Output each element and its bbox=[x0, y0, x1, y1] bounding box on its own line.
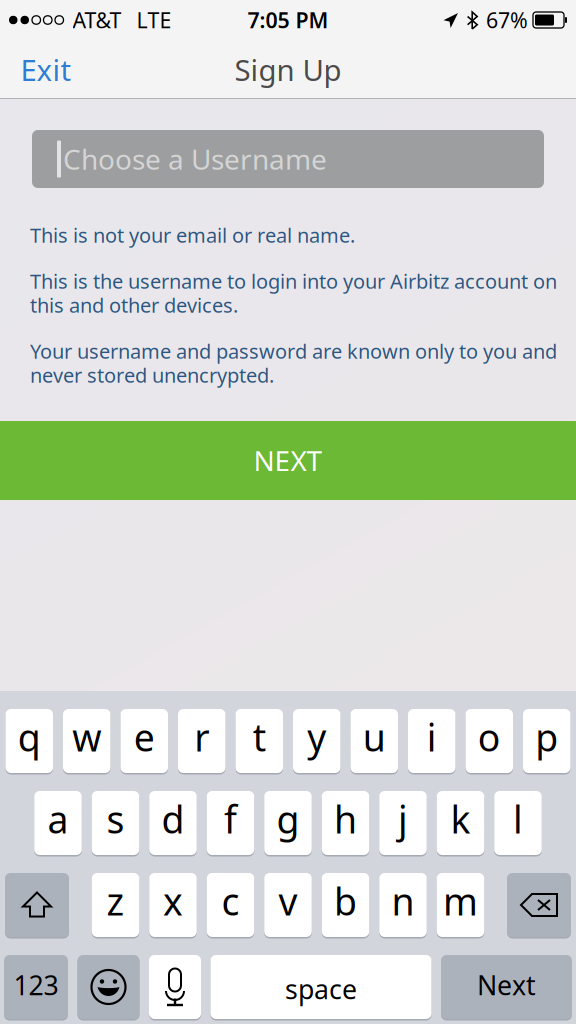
staticText: m bbox=[443, 876, 478, 926]
staticText: n bbox=[391, 876, 414, 926]
staticText: f bbox=[224, 794, 237, 844]
button[interactable]: space bbox=[210, 955, 431, 1019]
staticText: o bbox=[478, 712, 501, 762]
staticText: Your username and password are known onl… bbox=[30, 338, 557, 364]
button[interactable]: Dictation bbox=[149, 955, 201, 1019]
staticText: c bbox=[221, 876, 239, 926]
staticText: p bbox=[535, 712, 558, 762]
button[interactable]: r bbox=[178, 709, 225, 773]
button[interactable]: v bbox=[264, 873, 312, 937]
staticText: w bbox=[72, 712, 101, 762]
button[interactable]: t bbox=[235, 709, 283, 773]
staticText: AT&T bbox=[72, 6, 121, 34]
staticText: b bbox=[334, 876, 357, 926]
staticText: v bbox=[278, 876, 297, 926]
staticText: This is the username to login into your … bbox=[30, 268, 557, 294]
staticText: NEXT bbox=[253, 442, 322, 479]
staticText: z bbox=[106, 876, 124, 926]
staticText: j bbox=[398, 794, 408, 844]
button[interactable]: Choose a Username bbox=[32, 130, 544, 188]
button[interactable]: b bbox=[322, 873, 369, 937]
button[interactable]: 123 bbox=[4, 955, 68, 1019]
staticText: i bbox=[427, 712, 437, 762]
button[interactable]: m bbox=[437, 873, 484, 937]
staticText: e bbox=[134, 712, 155, 762]
staticText: r bbox=[194, 712, 209, 762]
staticText: Next bbox=[477, 967, 536, 1003]
staticText: LTE bbox=[136, 6, 171, 34]
button[interactable]: o bbox=[465, 709, 513, 773]
staticText: this and other devices. bbox=[30, 292, 238, 318]
staticText: l bbox=[513, 794, 523, 844]
button[interactable]: l bbox=[494, 791, 542, 855]
staticText: This is not your email or real name. bbox=[30, 222, 355, 248]
button[interactable]: j bbox=[379, 791, 427, 855]
staticText: Choose a Username bbox=[63, 140, 327, 178]
staticText: 123 bbox=[13, 967, 58, 1003]
button[interactable]: g bbox=[264, 791, 312, 855]
staticText: 7:05 PM bbox=[247, 6, 328, 34]
staticText: d bbox=[161, 794, 184, 844]
button[interactable]: d bbox=[149, 791, 197, 855]
button[interactable]: y bbox=[293, 709, 340, 773]
button[interactable]: n bbox=[379, 873, 427, 937]
button[interactable]: z bbox=[92, 873, 139, 937]
staticText: x bbox=[163, 876, 183, 926]
button[interactable]: i bbox=[408, 709, 455, 773]
staticText: t bbox=[253, 712, 266, 762]
button[interactable]: h bbox=[322, 791, 369, 855]
staticText: Exit bbox=[20, 50, 71, 89]
button[interactable]: x bbox=[149, 873, 197, 937]
button[interactable]: Shift bbox=[5, 873, 69, 937]
button[interactable]: Exit bbox=[0, 40, 92, 99]
button[interactable]: q bbox=[5, 709, 53, 773]
staticText: k bbox=[450, 794, 470, 844]
button[interactable]: p bbox=[523, 709, 570, 773]
button[interactable]: NEXT bbox=[0, 421, 576, 500]
staticText: h bbox=[334, 794, 357, 844]
staticText: Sign Up bbox=[234, 50, 341, 89]
staticText: s bbox=[106, 794, 124, 844]
button[interactable]: c bbox=[207, 873, 254, 937]
button[interactable]: k bbox=[437, 791, 484, 855]
staticText: q bbox=[18, 712, 41, 762]
staticText: space bbox=[285, 971, 357, 1007]
staticText: a bbox=[47, 794, 68, 844]
button[interactable]: u bbox=[350, 709, 398, 773]
button[interactable]: Emoji bbox=[77, 955, 139, 1019]
button[interactable]: w bbox=[63, 709, 110, 773]
staticText: u bbox=[363, 712, 386, 762]
staticText: y bbox=[307, 712, 326, 762]
staticText: g bbox=[276, 794, 299, 844]
button[interactable]: f bbox=[207, 791, 254, 855]
button[interactable]: a bbox=[34, 791, 82, 855]
button[interactable]: Next bbox=[441, 955, 572, 1019]
staticText: never stored unencrypted. bbox=[30, 362, 274, 388]
staticText: 67% bbox=[486, 6, 528, 34]
button[interactable]: Delete bbox=[507, 873, 571, 937]
button[interactable]: e bbox=[120, 709, 168, 773]
button[interactable]: s bbox=[92, 791, 139, 855]
